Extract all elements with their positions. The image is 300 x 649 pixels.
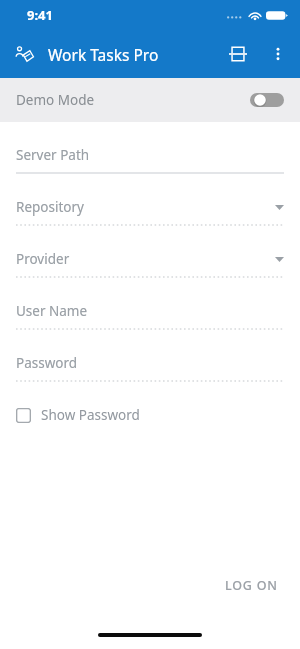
- button[interactable]: Demo Mode toggle: [250, 93, 284, 107]
- staticText: LOG ON: [225, 577, 278, 594]
- staticText: Repository: [16, 198, 84, 216]
- staticText: 9:41: [27, 6, 53, 24]
- button[interactable]: Password: [0, 352, 300, 382]
- button[interactable]: Demo Mode: [0, 78, 300, 122]
- button[interactable]: Repository: [0, 196, 300, 226]
- button[interactable]: Provider: [0, 248, 300, 278]
- button[interactable]: Scan: [218, 34, 258, 74]
- staticText: Server Path: [16, 146, 90, 164]
- button[interactable]: More options: [258, 34, 298, 74]
- button[interactable]: Show Password: [11, 400, 145, 430]
- button[interactable]: Server Path: [0, 144, 300, 174]
- staticText: Provider: [16, 250, 70, 268]
- staticText: User Name: [16, 302, 88, 320]
- staticText: Demo Mode: [16, 91, 95, 109]
- button[interactable]: User Name: [0, 300, 300, 330]
- staticText: Show Password: [41, 406, 140, 424]
- button[interactable]: LOG ON: [213, 569, 290, 602]
- staticText: Work Tasks Pro: [48, 44, 159, 65]
- button[interactable]: App logo: [8, 38, 40, 70]
- staticText: Password: [16, 354, 78, 372]
